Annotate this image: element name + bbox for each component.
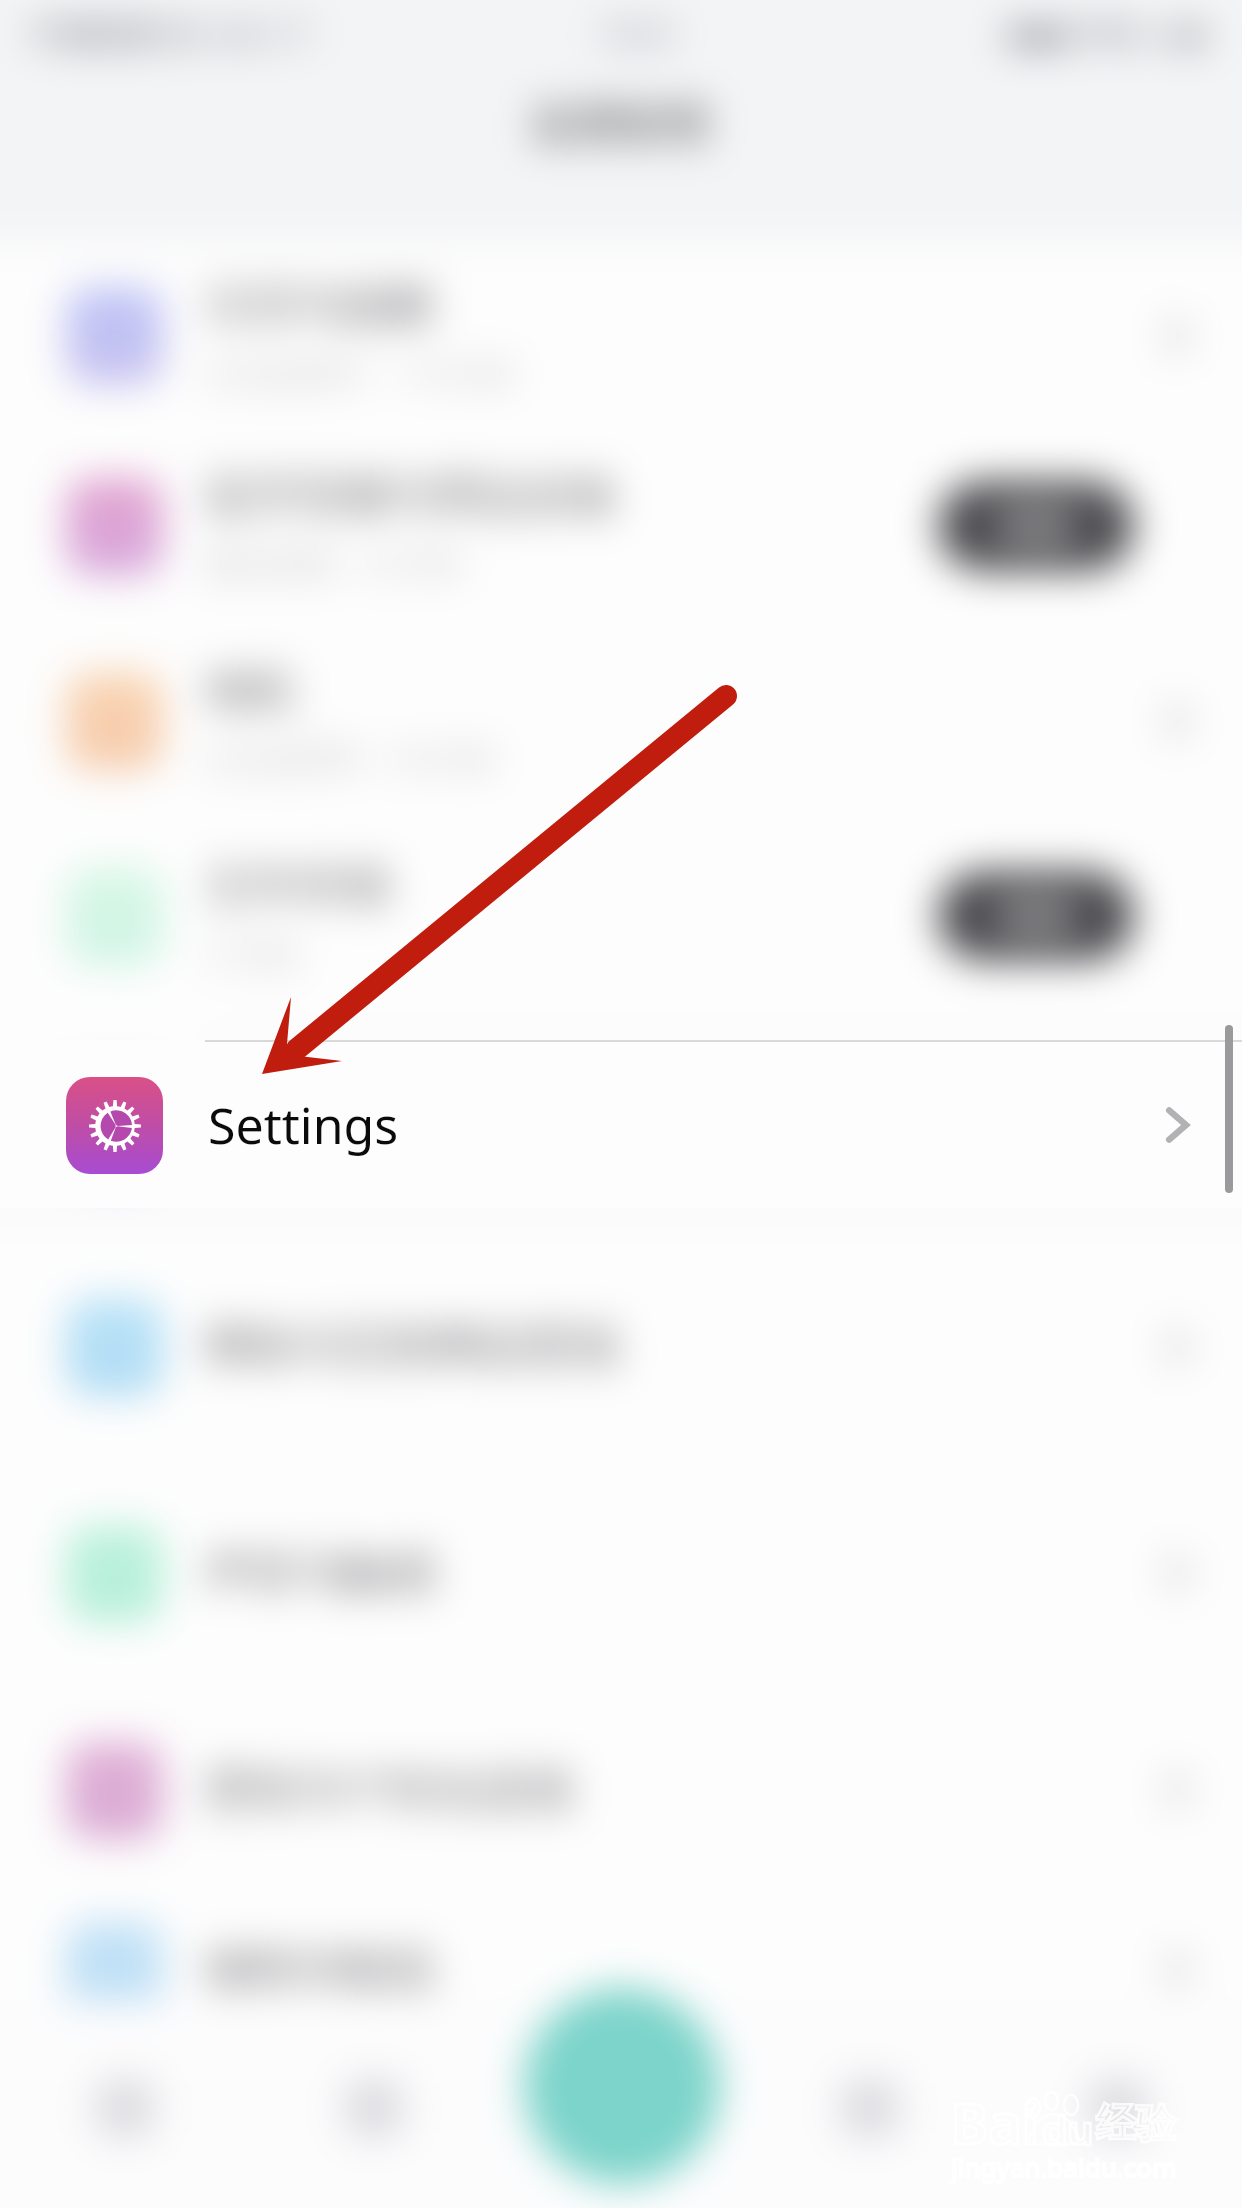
button[interactable]: Discover <box>249 2000 498 2208</box>
staticText: 辅助功能选 <box>205 1940 435 1998</box>
staticText: 应用管理 <box>533 98 709 153</box>
button[interactable]: 蓝牙音频与周边设备 <box>0 431 1242 621</box>
button[interactable]: 文件存储 <box>0 821 1242 1011</box>
staticText: 更新 <box>998 502 1074 550</box>
button[interactable]: 更新 <box>938 871 1134 961</box>
button[interactable]: 相机 <box>0 621 1242 821</box>
button[interactable]: 日历与提醒 <box>0 241 1242 431</box>
button[interactable]: Settings <box>0 1042 1242 1208</box>
button[interactable]: 壁纸与个性化选项 <box>0 1686 1242 1894</box>
staticText: Settings <box>208 1091 399 1159</box>
button[interactable]: Messages <box>746 2000 994 2208</box>
other: Open <box>1144 1097 1200 1153</box>
button[interactable]: Home <box>0 2000 249 2208</box>
staticText: 更新 <box>998 892 1074 940</box>
button[interactable]: Profile <box>994 2000 1242 2208</box>
button[interactable]: 声音与触感 <box>0 1460 1242 1686</box>
staticText: 文件存储 <box>205 857 389 915</box>
staticText: 声音与触感 <box>205 1544 435 1602</box>
other: Open <box>1144 1097 1200 1153</box>
staticText: Settings <box>208 1091 399 1159</box>
staticText: du <box>1042 2102 1094 2156</box>
staticText: ▪▪▪ 76% ▭▬ <box>1007 12 1206 54</box>
staticText: 中国联通 4G ·ull ↓↑ <box>30 12 314 54</box>
staticText: 网络与互联网设置项 <box>205 1318 619 1376</box>
staticText: 经验 <box>1096 2098 1176 2148</box>
button[interactable]: 更新 <box>938 481 1134 571</box>
staticText: 蓝牙音频与周边设备 <box>205 467 619 525</box>
staticText: 日历与提醒 <box>205 277 435 335</box>
button[interactable]: 辅助功能选 <box>0 1894 1242 2044</box>
button[interactable]: Settings <box>0 1042 1242 1208</box>
button[interactable]: Add <box>524 1988 720 2184</box>
staticText: 相机 <box>205 662 297 720</box>
staticText: 壁纸与个性化选项 <box>205 1761 573 1819</box>
button[interactable]: 网络与互联网设置项 <box>0 1234 1242 1460</box>
